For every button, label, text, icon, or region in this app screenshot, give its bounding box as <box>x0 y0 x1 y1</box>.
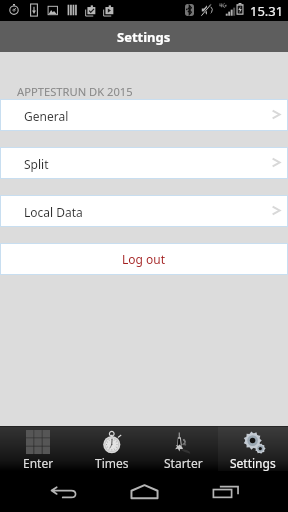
staticText: Starter <box>164 455 203 471</box>
staticText: Log out <box>122 251 166 267</box>
staticText: APPTESTRUN DK 2015 <box>17 84 133 98</box>
staticText: Split <box>24 156 49 172</box>
button[interactable]: Home <box>118 475 170 508</box>
button[interactable]: Local Data <box>1 196 287 226</box>
button[interactable]: Starter <box>148 426 218 471</box>
staticText: General <box>24 108 69 124</box>
staticText: Times <box>95 455 129 471</box>
button[interactable]: Settings <box>218 426 288 471</box>
button[interactable]: Log out <box>1 244 287 274</box>
button[interactable]: Enter <box>0 426 76 471</box>
staticText: 15.31 <box>250 2 284 20</box>
staticText: Settings <box>117 28 171 46</box>
button[interactable]: Back <box>38 475 90 508</box>
button[interactable]: General <box>1 100 287 130</box>
staticText: Settings <box>230 455 276 471</box>
button[interactable]: Times <box>76 426 148 471</box>
button[interactable]: Recent apps <box>200 475 252 508</box>
staticText: Local Data <box>24 204 83 220</box>
button[interactable]: Split <box>1 148 287 178</box>
staticText: Enter <box>23 455 54 471</box>
